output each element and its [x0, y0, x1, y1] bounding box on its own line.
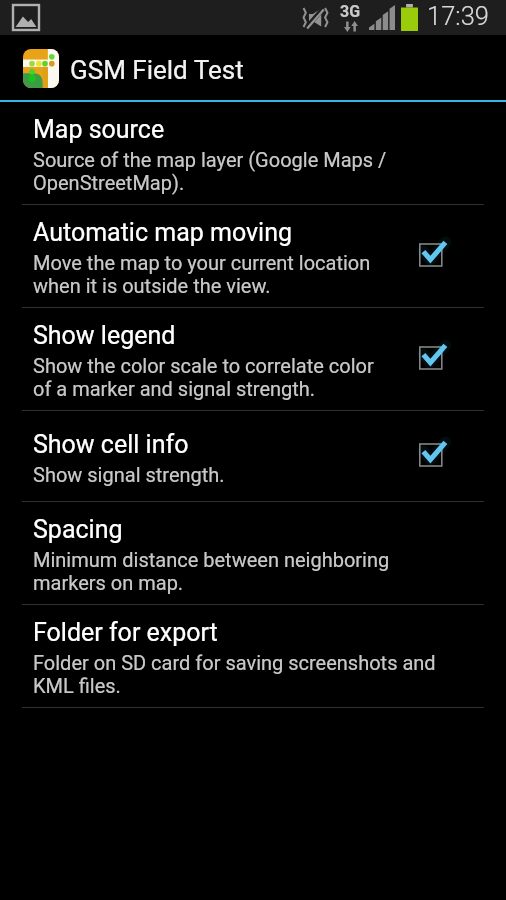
staticText: 17:39	[427, 1, 489, 31]
staticText: Map source	[33, 115, 165, 144]
staticText: Minimum distance between neighboring mar…	[33, 548, 390, 594]
button[interactable]: Toggle Show cell info	[400, 425, 506, 487]
staticText: Folder for export	[33, 618, 218, 647]
button[interactable]: Automatic map moving	[0, 205, 506, 307]
button[interactable]: Toggle Show legend	[400, 328, 506, 390]
staticText: Spacing	[33, 515, 123, 544]
staticText: Folder on SD card for saving screenshots…	[33, 651, 436, 697]
staticText: Move the map to your current location wh…	[33, 251, 371, 297]
staticText: Show legend	[33, 321, 176, 350]
staticText: Source of the map layer (Google Maps / O…	[33, 148, 387, 194]
button[interactable]: Spacing	[0, 502, 506, 604]
staticText: Show the color scale to correlate color …	[33, 354, 374, 400]
button[interactable]: Map source	[0, 102, 506, 204]
button[interactable]: Show legend	[0, 308, 506, 410]
staticText: GSM Field Test	[70, 55, 244, 85]
staticText: 3G	[340, 2, 361, 21]
staticText: Show signal strength.	[33, 463, 225, 486]
staticText: Automatic map moving	[33, 218, 293, 247]
button[interactable]: Folder for export	[0, 605, 506, 707]
button[interactable]: GSM Field Test	[0, 35, 265, 100]
staticText: Show cell info	[33, 430, 189, 459]
button[interactable]: Show cell info	[0, 411, 506, 501]
button[interactable]: Toggle Automatic map moving	[400, 225, 506, 287]
